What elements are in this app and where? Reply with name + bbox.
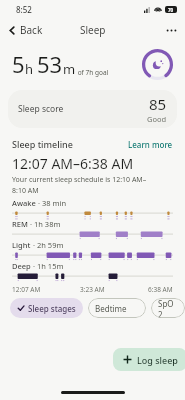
staticText: · xyxy=(31,240,37,250)
staticText: 8:52 xyxy=(16,4,32,15)
staticText: · xyxy=(36,198,42,208)
staticText: SpO 2 xyxy=(158,298,178,318)
staticText: 3:23 AM xyxy=(80,285,105,294)
staticText: Log sleep xyxy=(137,354,178,366)
staticText: Deep xyxy=(12,261,31,271)
staticText: · xyxy=(28,219,34,229)
staticText: 85 xyxy=(149,94,167,114)
staticText: Sleep timeline xyxy=(12,138,73,150)
button[interactable]: Learn more xyxy=(128,139,173,150)
button[interactable]: More options xyxy=(157,23,185,37)
other: Back xyxy=(7,25,18,36)
staticText: of 7h goal xyxy=(76,68,109,77)
button[interactable]: Sleep score xyxy=(8,90,177,128)
staticText: m xyxy=(63,60,76,78)
staticText: Learn more xyxy=(128,139,173,150)
button[interactable]: Bedtime xyxy=(88,298,146,318)
staticText: Your current sleep schedule is 12:10 AM–… xyxy=(12,175,147,195)
button[interactable]: SpO 2 xyxy=(151,298,185,318)
staticText: 2h 59m xyxy=(37,240,64,250)
staticText: 5 xyxy=(12,49,25,79)
button[interactable]: Sleep stages xyxy=(10,298,83,318)
staticText: h xyxy=(25,60,37,78)
staticText: Sleep score xyxy=(18,103,64,115)
staticText: 12:07 AM–6:38 AM xyxy=(12,154,134,173)
staticText: 1h 15m xyxy=(37,261,64,271)
staticText: · xyxy=(31,261,37,271)
staticText: 70 xyxy=(168,7,174,13)
staticText: 12:07 AM xyxy=(12,285,41,294)
staticText: Sleep stages xyxy=(28,303,76,314)
staticText: Light xyxy=(12,240,31,250)
staticText: 53 xyxy=(37,49,63,79)
staticText: Good xyxy=(147,114,167,124)
staticText: 6:38 AM xyxy=(148,285,173,294)
staticText: 38 min xyxy=(42,198,67,208)
button[interactable]: Back xyxy=(0,23,49,37)
staticText: 1h 38m xyxy=(34,219,61,229)
staticText: REM xyxy=(12,219,28,229)
staticText: Sleep xyxy=(80,23,106,37)
staticText: Bedtime xyxy=(95,303,127,314)
staticText: Awake xyxy=(12,198,36,208)
staticText: Back xyxy=(20,23,43,37)
button[interactable]: Log sleep xyxy=(113,348,185,371)
